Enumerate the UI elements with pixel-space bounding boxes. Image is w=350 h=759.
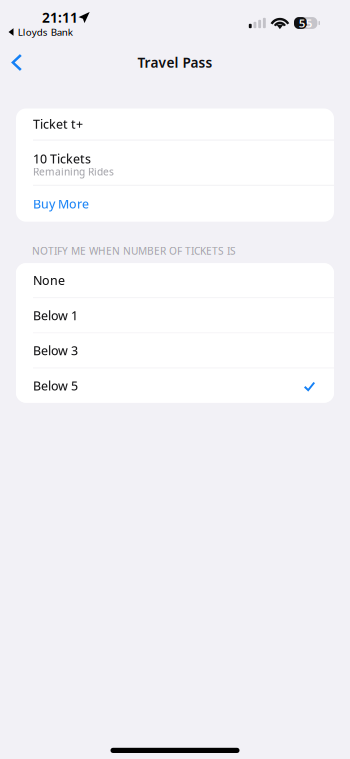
- button[interactable]: Below 1: [16, 298, 334, 332]
- staticText: Below 1: [33, 307, 78, 324]
- staticText: Below 3: [33, 342, 78, 359]
- staticText: NOTIFY ME WHEN NUMBER OF TICKETS IS: [32, 244, 236, 258]
- staticText: 21:11: [42, 8, 78, 27]
- staticText: Ticket t+: [33, 116, 83, 132]
- button[interactable]: 10 Tickets: [16, 140, 334, 185]
- staticText: Lloyds Bank: [18, 25, 73, 39]
- staticText: Remaining Rides: [33, 165, 114, 178]
- staticText: Buy More: [33, 195, 89, 212]
- staticText: 55: [299, 15, 313, 31]
- button[interactable]: Below 5: [16, 368, 334, 403]
- button[interactable]: Below 3: [16, 333, 334, 368]
- staticText: Below 5: [33, 377, 78, 394]
- button[interactable]: Ticket t+: [16, 108, 334, 140]
- staticText: 10 Tickets: [33, 150, 91, 167]
- staticText: None: [33, 272, 65, 289]
- staticText: Travel Pass: [137, 53, 212, 72]
- button[interactable]: None: [16, 263, 334, 297]
- button[interactable]: Buy More: [16, 186, 334, 222]
- button[interactable]: Back: [0, 45, 43, 79]
